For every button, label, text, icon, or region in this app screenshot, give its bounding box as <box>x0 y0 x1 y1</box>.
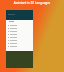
button[interactable] <box>6 30 33 33</box>
button[interactable] <box>6 45 33 48</box>
button[interactable] <box>6 27 33 30</box>
button[interactable] <box>6 36 33 39</box>
button[interactable] <box>6 24 33 27</box>
button[interactable] <box>6 39 33 42</box>
button[interactable] <box>6 42 33 45</box>
button[interactable] <box>6 33 33 36</box>
staticText: Assistant in 30 Languages <box>0 1 64 5</box>
